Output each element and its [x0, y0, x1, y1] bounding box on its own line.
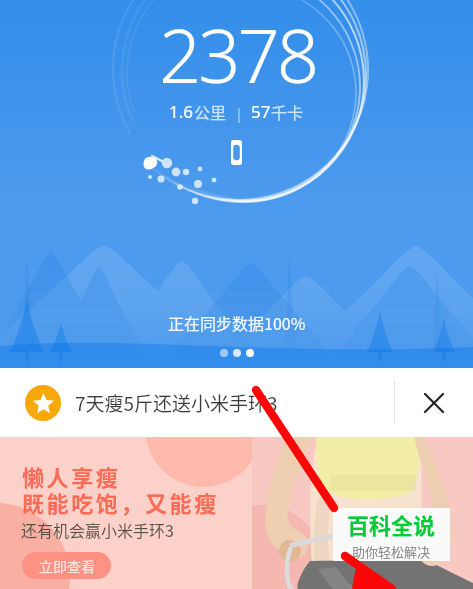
staticText: 还有机会赢小米手环3: [21, 518, 174, 541]
staticText: 既能吃饱，又能瘦: [22, 486, 219, 518]
staticText: 懒人享瘦: [22, 460, 121, 492]
staticText: 公里: [194, 100, 227, 123]
staticText: 57: [251, 100, 271, 123]
button[interactable]: 懒人享瘦: [0, 437, 473, 589]
staticText: 1.6: [169, 100, 194, 123]
staticText: 7天瘦5斤还送小米手环3: [75, 389, 278, 417]
staticText: 助你轻松解决: [352, 542, 431, 561]
button[interactable]: 7天瘦5斤还送小米手环3: [0, 368, 473, 437]
button[interactable]: 立即查看: [22, 552, 111, 579]
staticText: 2378: [159, 4, 317, 105]
staticText: 正在同步数据100%: [168, 311, 306, 334]
staticText: |: [227, 103, 251, 123]
staticText: 立即查看: [39, 556, 95, 576]
button[interactable]: Close: [395, 368, 473, 437]
staticText: 千卡: [271, 100, 304, 123]
staticText: 百科全说: [347, 508, 436, 540]
